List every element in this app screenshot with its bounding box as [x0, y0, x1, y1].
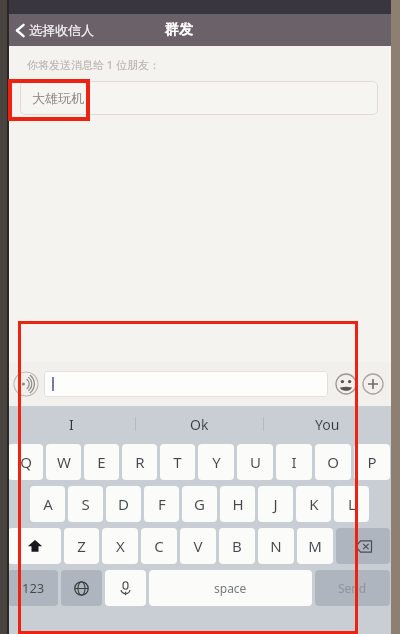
button[interactable]: R	[122, 444, 157, 480]
staticText: J	[273, 494, 278, 514]
staticText: Ok	[190, 415, 209, 434]
staticText: U	[250, 452, 261, 472]
button[interactable]: V	[180, 528, 216, 564]
button[interactable]: C	[141, 528, 177, 564]
button[interactable]: U	[237, 444, 273, 480]
button[interactable]: H	[220, 486, 255, 522]
button[interactable]: Z	[64, 528, 99, 564]
staticText: You	[315, 415, 340, 434]
staticText: Q	[20, 452, 32, 472]
staticText: K	[309, 494, 319, 514]
staticText: Y	[212, 452, 221, 472]
staticText: P	[367, 452, 377, 472]
button[interactable]: Voice typing	[105, 570, 146, 606]
button[interactable]: P	[354, 444, 390, 480]
button[interactable]: Voice input	[13, 371, 39, 397]
staticText: F	[158, 494, 166, 514]
button[interactable]: N	[258, 528, 294, 564]
button[interactable]: Y	[198, 444, 234, 480]
staticText: S	[81, 494, 90, 514]
other: Back	[15, 23, 26, 38]
button[interactable]: I	[276, 444, 312, 480]
button[interactable]: D	[106, 486, 141, 522]
button[interactable]: More options	[361, 372, 385, 396]
staticText: B	[232, 536, 242, 556]
staticText: space	[214, 580, 247, 596]
button[interactable]: T	[160, 444, 195, 480]
staticText: M	[308, 536, 322, 556]
button[interactable]: M	[297, 528, 333, 564]
button[interactable]: Shift	[8, 528, 61, 564]
button[interactable]: 群发	[159, 19, 199, 41]
button[interactable]: Back	[7, 19, 102, 41]
staticText: W	[57, 452, 71, 472]
staticText: C	[154, 536, 164, 556]
staticText: I	[69, 415, 74, 434]
button[interactable]	[44, 371, 328, 397]
button[interactable]: F	[144, 486, 179, 522]
staticText: R	[135, 452, 145, 472]
button[interactable]: O	[315, 444, 351, 480]
button[interactable]: Q	[8, 444, 43, 480]
button[interactable]: Send	[315, 570, 390, 606]
staticText: N	[270, 536, 282, 556]
button[interactable]: J	[258, 486, 293, 522]
button[interactable]: 123	[8, 570, 58, 606]
button[interactable]: Ok	[136, 406, 263, 442]
staticText: 你将发送消息给 1 位朋友：	[27, 57, 161, 72]
staticText: X	[116, 536, 125, 556]
staticText: V	[193, 536, 203, 556]
staticText: T	[173, 452, 182, 472]
button[interactable]: X	[102, 528, 138, 564]
button[interactable]: 大雄玩机	[20, 81, 378, 115]
button[interactable]: Emoji	[334, 372, 358, 396]
staticText: Z	[77, 536, 86, 556]
staticText: 123	[22, 579, 45, 597]
button[interactable]: K	[296, 486, 331, 522]
button[interactable]: space	[149, 570, 312, 606]
staticText: Send	[338, 580, 367, 596]
staticText: A	[43, 494, 53, 514]
staticText: L	[348, 494, 356, 514]
button[interactable]: B	[219, 528, 255, 564]
staticText: O	[327, 452, 339, 472]
button[interactable]: Backspace	[336, 528, 390, 564]
button[interactable]: You	[264, 406, 391, 442]
staticText: D	[118, 494, 129, 514]
button[interactable]: L	[334, 486, 369, 522]
staticText: 选择收信人	[29, 22, 94, 38]
button[interactable]: A	[30, 486, 65, 522]
staticText: G	[194, 494, 205, 514]
staticText: I	[291, 452, 297, 472]
staticText: H	[232, 494, 244, 514]
button[interactable]: Change language	[61, 570, 102, 606]
button[interactable]: G	[182, 486, 217, 522]
staticText: 大雄玩机	[32, 90, 84, 106]
staticText: E	[97, 452, 106, 472]
button[interactable]: W	[46, 444, 81, 480]
button[interactable]: S	[68, 486, 103, 522]
button[interactable]: I	[7, 406, 135, 442]
button[interactable]: E	[84, 444, 119, 480]
